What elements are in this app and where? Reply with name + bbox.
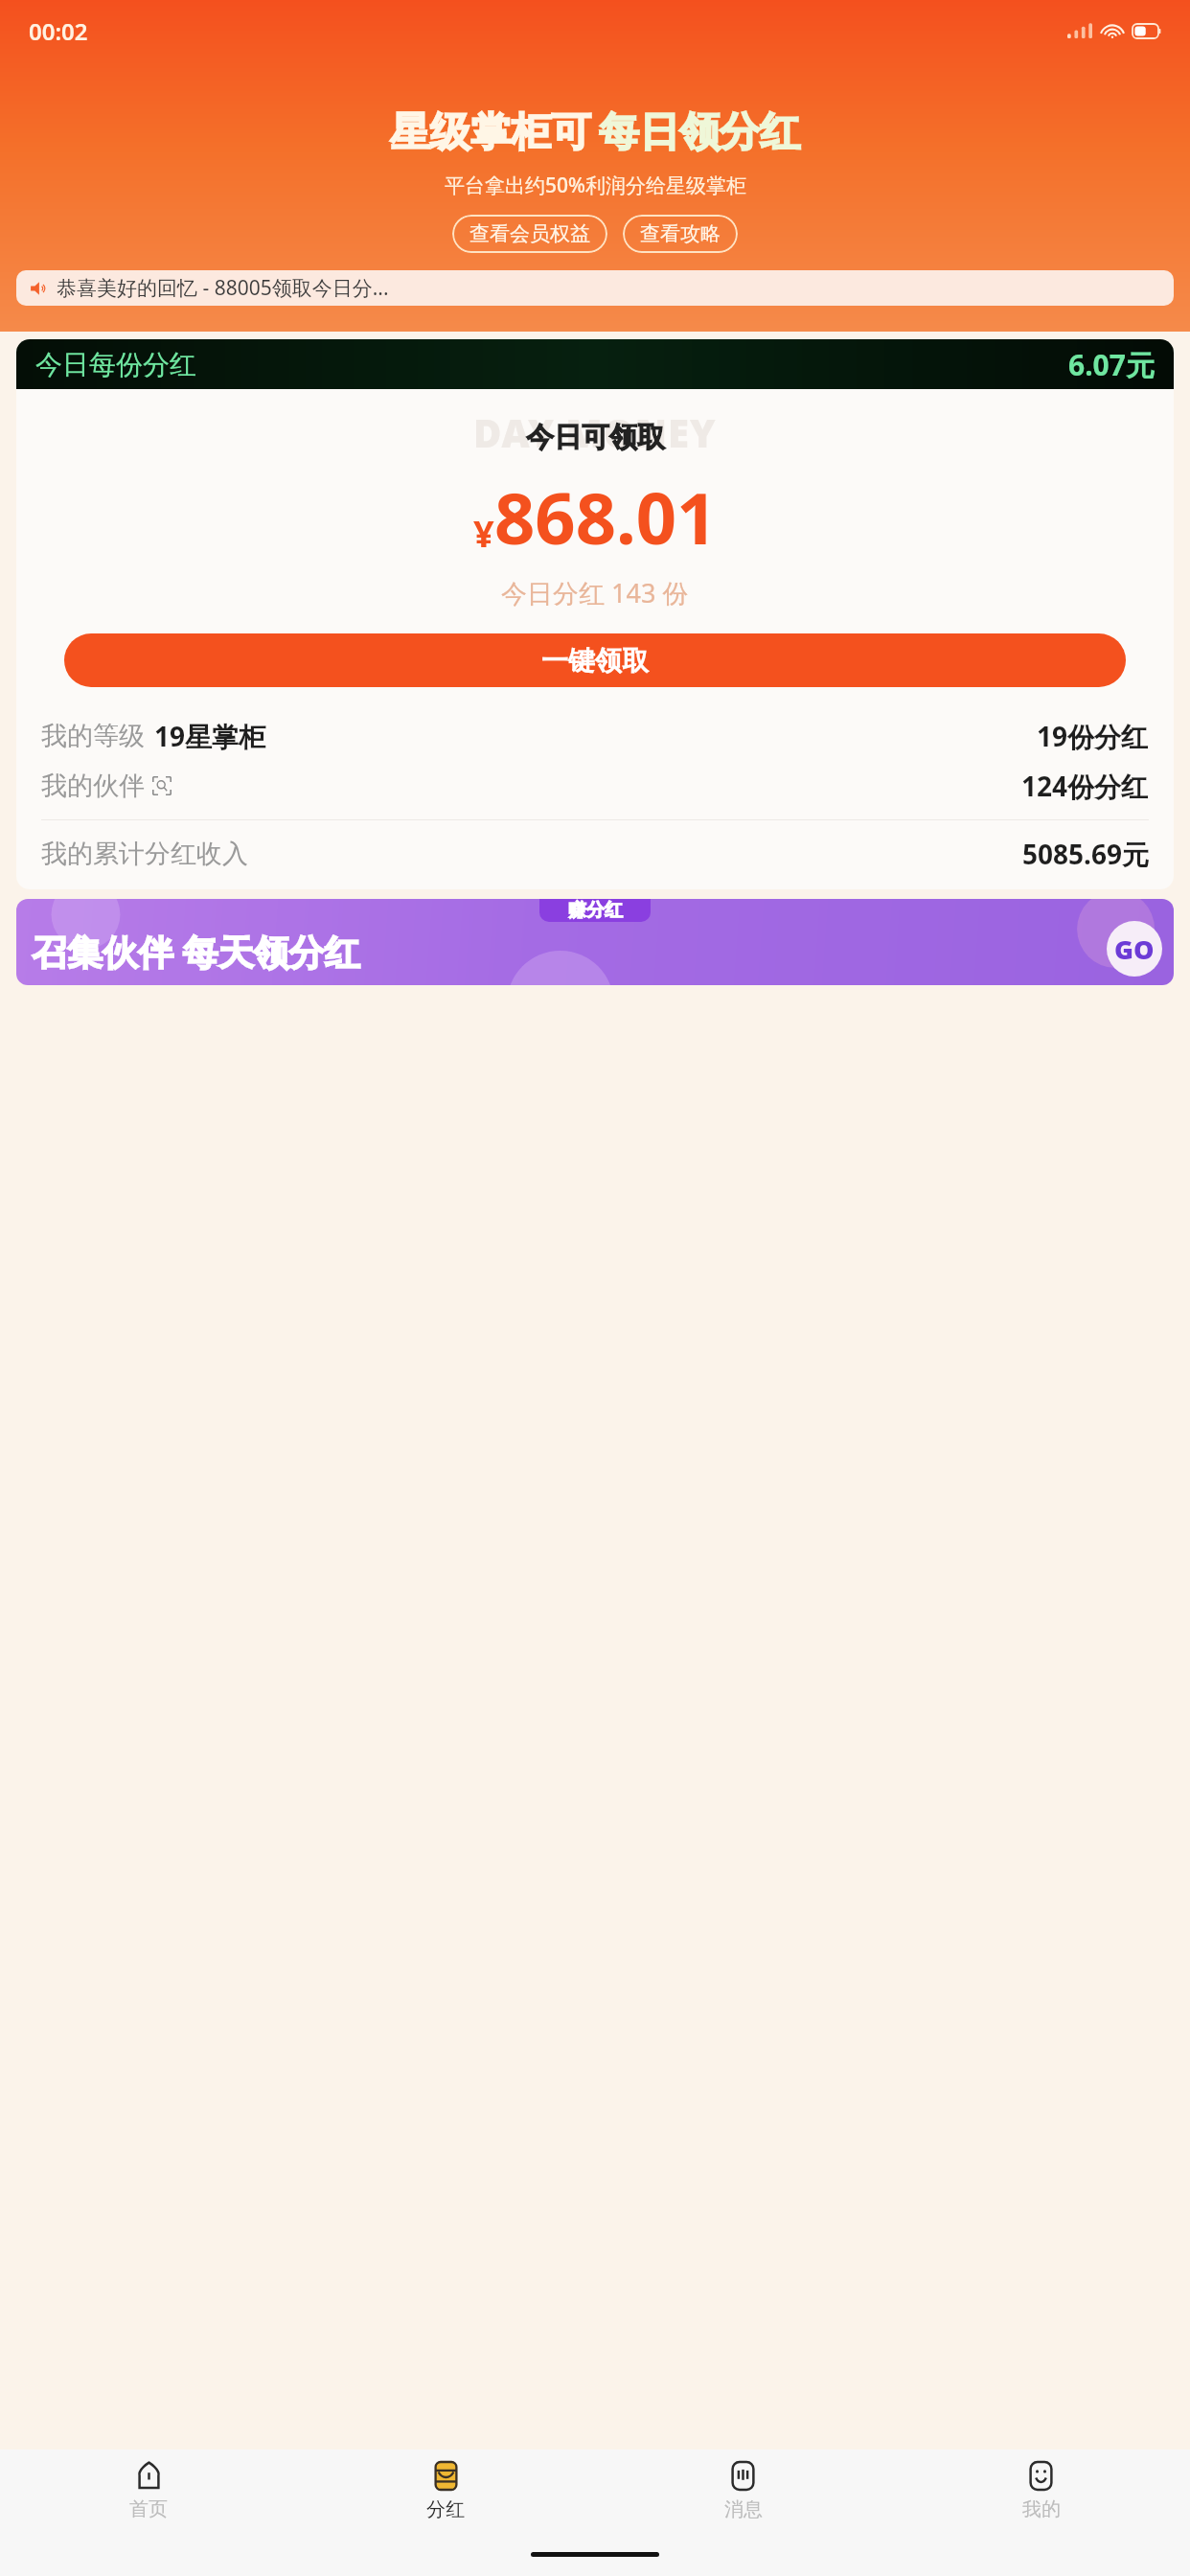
staticText: 查看会员权益 bbox=[469, 221, 590, 246]
staticText: 平台拿出约50%利润分给星级掌柜 bbox=[445, 172, 746, 199]
staticText: 每日领分红 bbox=[599, 107, 800, 158]
button[interactable]: 今日每份分红 bbox=[16, 339, 1174, 389]
staticText: DAY MONEY bbox=[473, 406, 717, 458]
staticText: 19星掌柜 bbox=[154, 718, 266, 754]
staticText: 一键领取 bbox=[541, 644, 649, 678]
button[interactable]: 查看攻略 bbox=[623, 215, 738, 253]
staticText: 6.07元 bbox=[1068, 345, 1155, 384]
button[interactable]: 分红 bbox=[297, 2449, 594, 2532]
staticText: 召集伙伴 每天领分红 bbox=[32, 927, 360, 976]
staticText: 5085.69元 bbox=[1022, 836, 1149, 872]
button[interactable]: 消息 bbox=[594, 2449, 892, 2532]
button[interactable]: 一键领取 bbox=[64, 633, 1126, 687]
button[interactable]: GO bbox=[1107, 921, 1162, 977]
staticText: 我的等级 bbox=[41, 720, 145, 752]
button[interactable]: 首页 bbox=[0, 2449, 297, 2532]
button[interactable]: 赚分红 bbox=[16, 899, 1174, 985]
staticText: ¥ bbox=[473, 508, 494, 558]
staticText: 首页 bbox=[129, 2497, 168, 2521]
staticText: 我的累计分红收入 bbox=[41, 838, 248, 870]
button[interactable]: 恭喜美好的回忆 - 88005领取今日分... bbox=[16, 270, 1174, 306]
staticText: 19份分红 bbox=[1037, 718, 1149, 754]
staticText: 查看攻略 bbox=[640, 221, 721, 246]
button[interactable]: 我的伙伴 bbox=[41, 768, 1149, 804]
button[interactable]: 查看会员权益 bbox=[452, 215, 607, 253]
staticText: 赚分红 bbox=[568, 899, 623, 922]
staticText: 868.01 bbox=[494, 469, 718, 565]
staticText: 今日分红 143 份 bbox=[501, 575, 689, 610]
staticText: 124份分红 bbox=[1021, 768, 1149, 804]
button[interactable]: 我的 bbox=[892, 2449, 1190, 2532]
button[interactable]: 我的等级 bbox=[41, 718, 1149, 754]
staticText: 分红 bbox=[426, 2497, 465, 2521]
button[interactable]: Scan partners bbox=[152, 776, 172, 795]
staticText: 我的伙伴 bbox=[41, 770, 145, 802]
staticText: 00:02 bbox=[29, 15, 88, 47]
staticText: 星级掌柜可 bbox=[390, 107, 591, 158]
button[interactable]: 我的累计分红收入 bbox=[41, 836, 1149, 872]
staticText: 我的 bbox=[1022, 2497, 1061, 2521]
staticText: GO bbox=[1114, 931, 1155, 967]
staticText: 今日每份分红 bbox=[35, 348, 196, 381]
staticText: 今日可领取 bbox=[526, 420, 665, 455]
staticText: 恭喜美好的回忆 - 88005领取今日分... bbox=[57, 274, 389, 302]
staticText: 消息 bbox=[724, 2497, 763, 2521]
